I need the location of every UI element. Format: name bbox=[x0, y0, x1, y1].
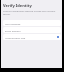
staticText: Email address bbox=[5, 29, 59, 32]
staticText: Choose a verification method to keep you… bbox=[3, 10, 61, 16]
staticText: Text message bbox=[5, 22, 59, 25]
button[interactable]: Email address bbox=[3, 27, 61, 33]
button[interactable]: Text message bbox=[3, 20, 61, 26]
staticText: Verify Identity bbox=[3, 3, 32, 8]
staticText: Authenticator app bbox=[5, 36, 57, 39]
button[interactable]: Authenticator app bbox=[3, 34, 61, 40]
